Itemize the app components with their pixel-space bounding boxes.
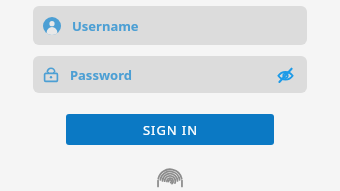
staticText: SIGN IN	[143, 121, 198, 139]
staticText: Username	[72, 17, 139, 35]
button[interactable]: Username	[33, 6, 307, 45]
button[interactable]: SIGN IN	[66, 114, 274, 145]
staticText: Password	[70, 66, 132, 84]
button[interactable]: Show password	[273, 63, 297, 87]
button[interactable]: Sign in with fingerprint	[155, 162, 185, 191]
button[interactable]: Password	[33, 56, 307, 93]
